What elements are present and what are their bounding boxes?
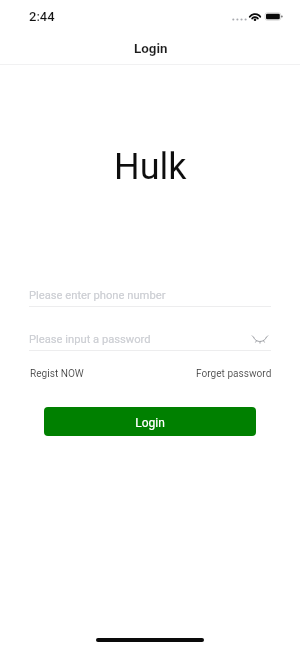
- staticText: Please input a password: [29, 333, 151, 346]
- button[interactable]: Forget password: [193, 365, 275, 383]
- button[interactable]: Login: [44, 407, 256, 436]
- staticText: Login: [134, 41, 168, 57]
- staticText: Hulk: [114, 146, 187, 188]
- button[interactable]: Please enter phone number: [29, 288, 271, 307]
- staticText: Regist NOW: [30, 368, 84, 380]
- staticText: 2:44: [29, 9, 55, 24]
- button[interactable]: Regist NOW: [27, 365, 87, 383]
- staticText: Please enter phone number: [29, 289, 166, 302]
- button[interactable]: Show password: [250, 330, 270, 349]
- staticText: Forget password: [196, 368, 272, 380]
- staticText: Login: [135, 416, 165, 430]
- button[interactable]: Please input a password: [29, 332, 271, 351]
